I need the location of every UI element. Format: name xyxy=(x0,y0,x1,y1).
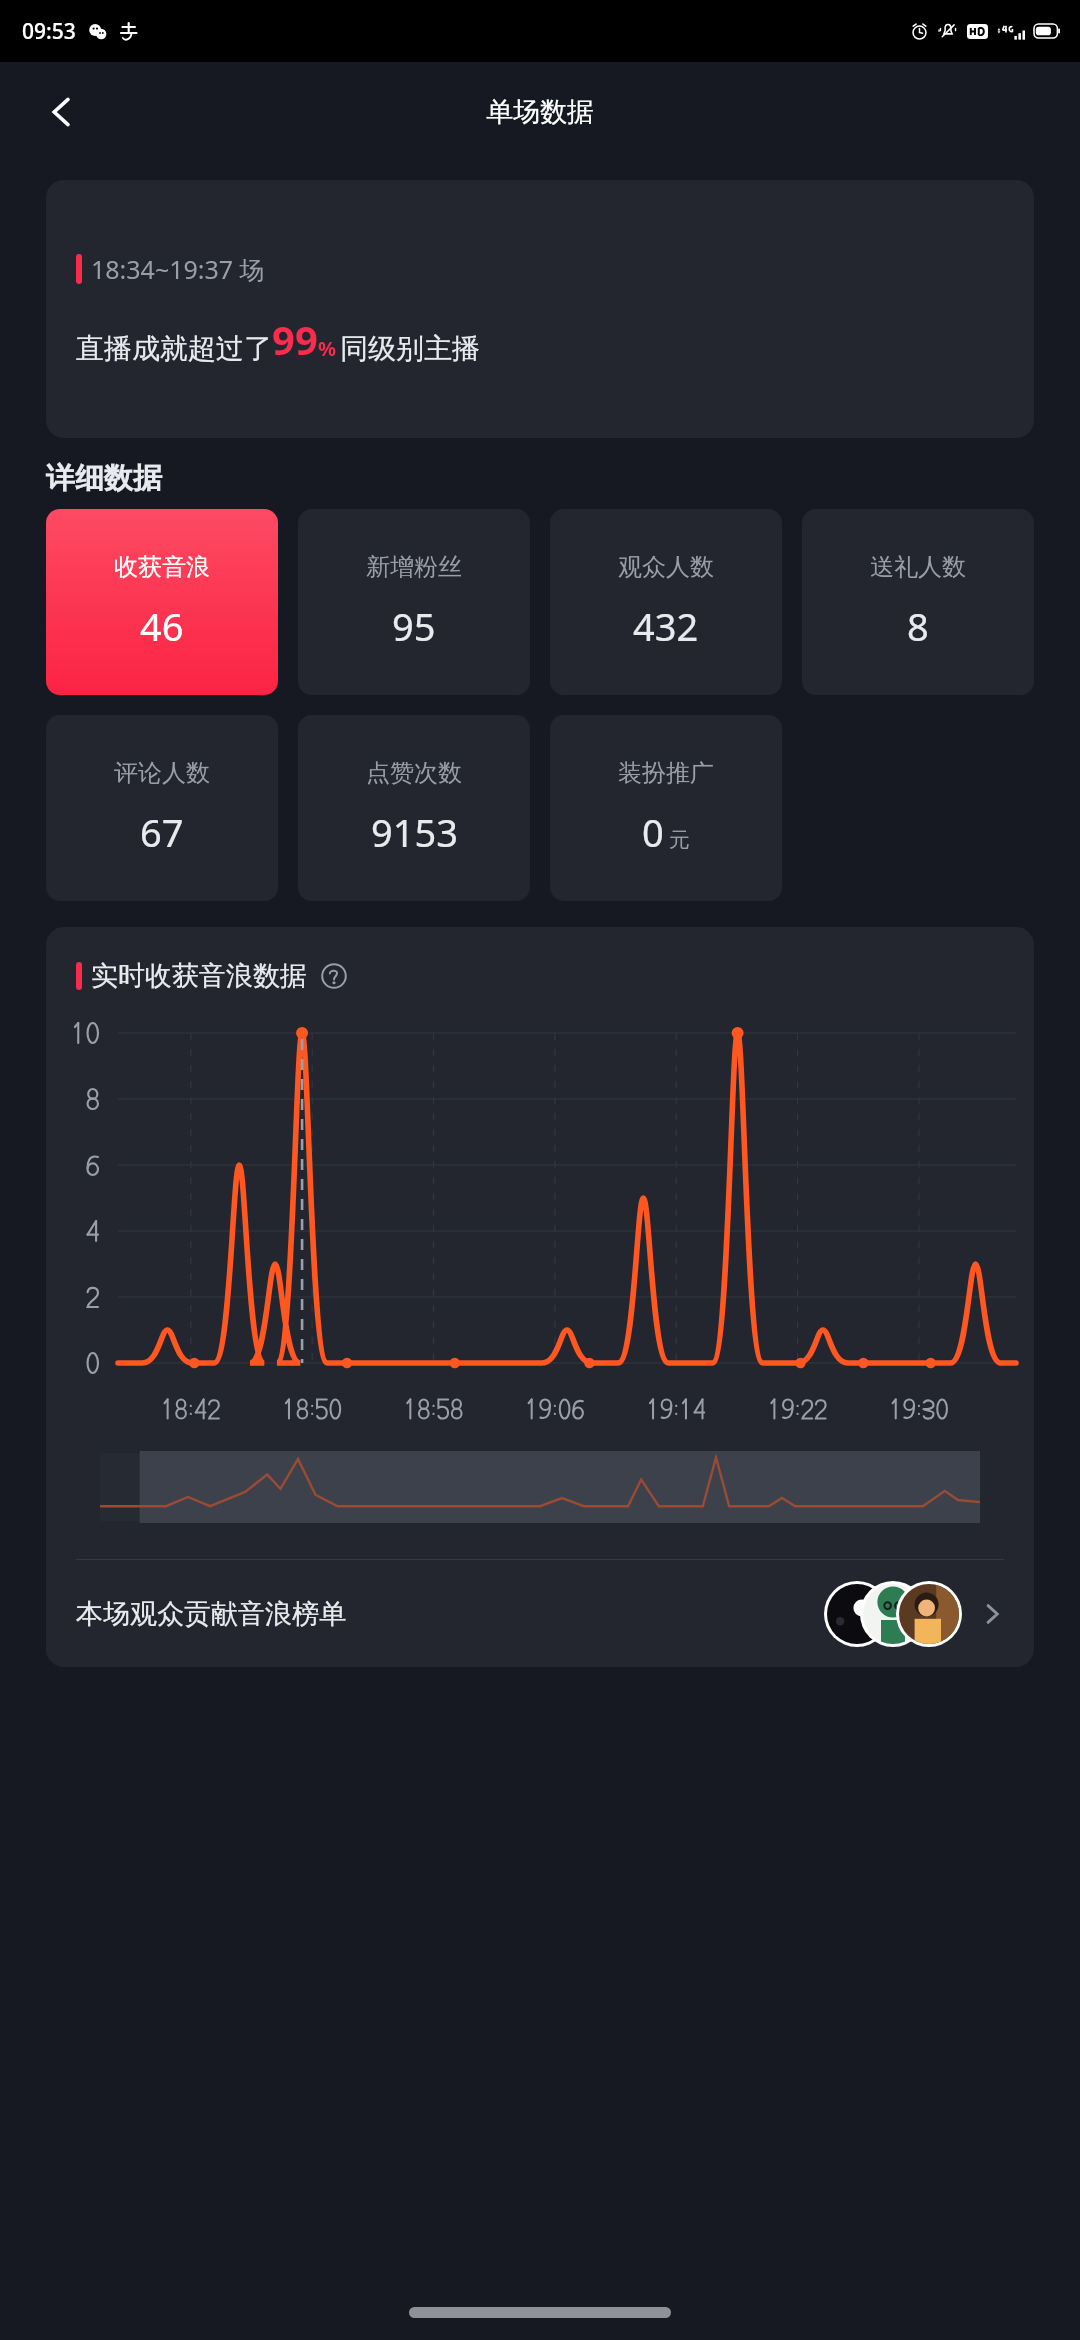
staticText: 432 xyxy=(633,600,699,652)
button[interactable]: 本场观众贡献音浪榜单 xyxy=(46,1560,1034,1667)
staticText: 0 xyxy=(642,806,664,858)
button[interactable]: 点赞次数 xyxy=(298,715,530,901)
other: More xyxy=(972,1594,1012,1634)
staticText: 09:53 xyxy=(22,17,76,46)
staticText: 送礼人数 xyxy=(870,552,966,582)
button[interactable]: Back xyxy=(34,84,90,140)
staticText: 67 xyxy=(140,806,184,858)
staticText: 点赞次数 xyxy=(366,758,462,788)
staticText: 单场数据 xyxy=(486,95,594,129)
button[interactable]: 装扮推广 xyxy=(550,715,782,901)
staticText: 实时收获音浪数据 xyxy=(91,959,307,993)
staticText: 直播成就超过了 xyxy=(76,331,272,366)
staticText: 46 xyxy=(140,600,184,652)
staticText: 99 xyxy=(272,312,318,366)
staticText: 同级别主播 xyxy=(340,331,480,366)
staticText: 9153 xyxy=(371,806,458,858)
button[interactable]: 评论人数 xyxy=(46,715,278,901)
staticText: % xyxy=(318,335,337,362)
staticText: 详细数据 xyxy=(46,460,162,497)
button[interactable]: 新增粉丝 xyxy=(298,509,530,695)
staticText: 本场观众贡献音浪榜单 xyxy=(76,1597,346,1631)
staticText: 评论人数 xyxy=(114,758,210,788)
staticText: 8 xyxy=(907,600,929,652)
staticText: 新增粉丝 xyxy=(366,552,462,582)
staticText: 18:34~19:37 场 xyxy=(91,252,265,286)
button[interactable]: 收获音浪 xyxy=(46,509,278,695)
button[interactable]: Help xyxy=(319,961,349,991)
staticText: 95 xyxy=(392,600,436,652)
staticText: 元 xyxy=(669,827,690,853)
staticText: 观众人数 xyxy=(618,552,714,582)
staticText: 装扮推广 xyxy=(618,758,714,788)
button[interactable]: 送礼人数 xyxy=(802,509,1034,695)
button[interactable]: 观众人数 xyxy=(550,509,782,695)
button[interactable]: 18:34~19:37 场 xyxy=(46,180,1034,438)
staticText: 收获音浪 xyxy=(114,552,210,582)
